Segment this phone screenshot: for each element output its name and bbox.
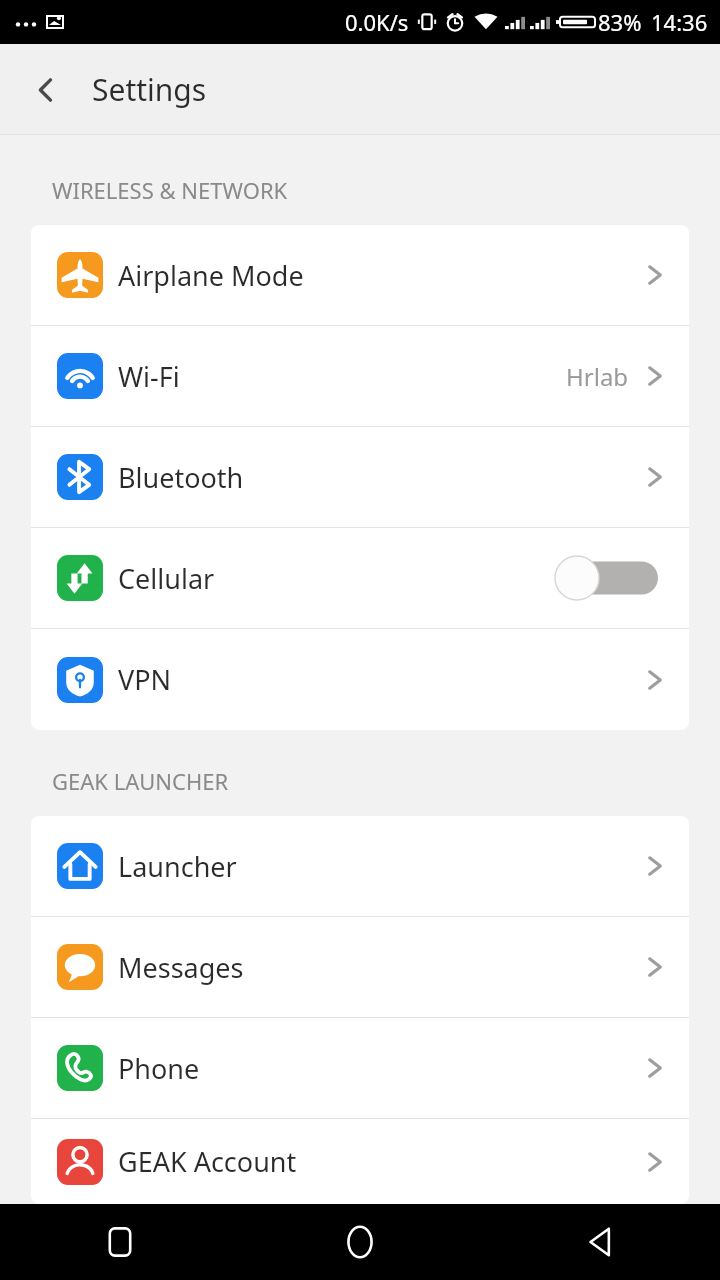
button[interactable]: Wi-Fi	[31, 326, 689, 427]
button[interactable]: Back	[18, 62, 74, 118]
staticText: GEAK Account	[118, 1143, 297, 1180]
staticText: Bluetooth	[118, 459, 244, 496]
staticText: VPN	[118, 661, 172, 698]
staticText: 0.0K/s	[345, 7, 409, 37]
staticText: Wi-Fi	[118, 358, 180, 395]
button[interactable]: Cellular toggle	[554, 555, 658, 601]
button[interactable]: Recent apps	[0, 1204, 240, 1280]
button[interactable]: Airplane Mode	[31, 225, 689, 326]
button[interactable]: Cellular	[31, 528, 689, 629]
staticText: GEAK LAUNCHER	[52, 766, 229, 796]
staticText: Launcher	[118, 848, 237, 885]
staticText: 14:36	[651, 7, 708, 37]
button[interactable]: Phone	[31, 1018, 689, 1119]
button[interactable]: Home	[240, 1204, 480, 1280]
staticText: Messages	[118, 949, 244, 986]
button[interactable]: Back	[480, 1204, 720, 1280]
staticText: WIRELESS & NETWORK	[52, 175, 288, 205]
staticText: Airplane Mode	[118, 257, 304, 294]
button[interactable]: Bluetooth	[31, 427, 689, 528]
staticText: Hrlab	[566, 360, 629, 393]
staticText: Phone	[118, 1050, 200, 1087]
button[interactable]: VPN	[31, 629, 689, 730]
button[interactable]: GEAK Account	[31, 1119, 689, 1204]
button[interactable]: Launcher	[31, 816, 689, 917]
button[interactable]: Messages	[31, 917, 689, 1018]
staticText: Settings	[92, 69, 207, 110]
staticText: 83%	[598, 7, 642, 37]
staticText: Cellular	[118, 560, 215, 597]
